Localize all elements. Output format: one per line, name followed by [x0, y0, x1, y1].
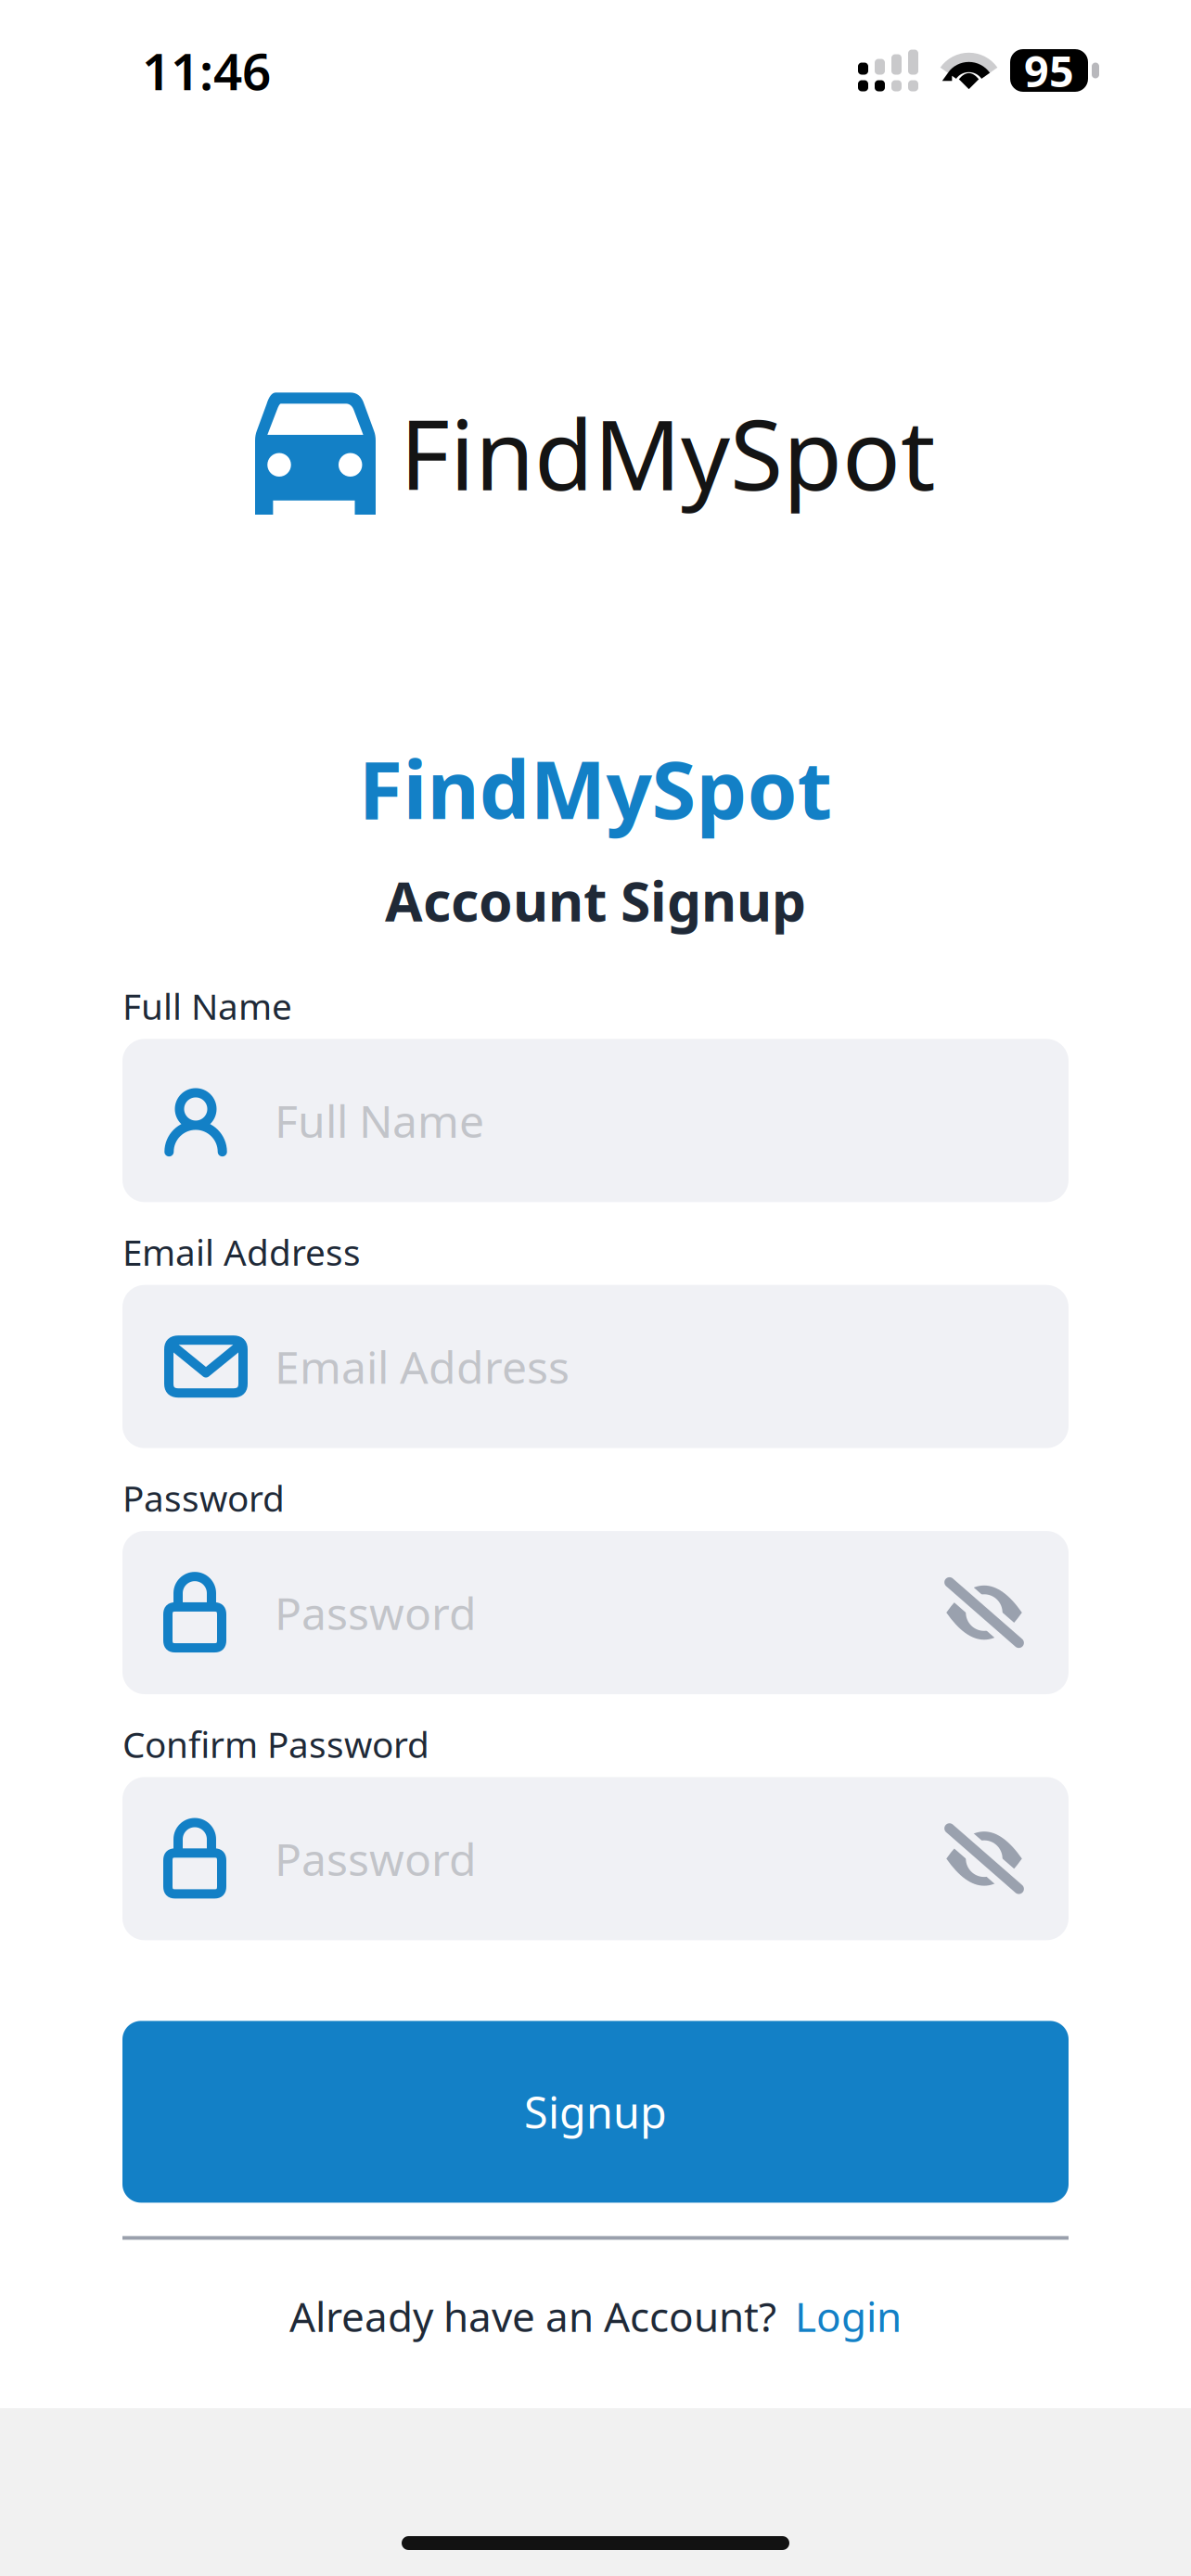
staticText: Confirm Password	[122, 1720, 429, 1768]
staticText: FindMySpot	[359, 734, 832, 841]
staticText: Password	[122, 1474, 285, 1522]
button[interactable]: Password	[122, 1777, 1069, 1940]
staticText: 95	[1024, 42, 1074, 99]
staticText: Full Name	[275, 1091, 484, 1150]
staticText: 11:46	[142, 37, 271, 104]
staticText: Email Address	[122, 1228, 361, 1276]
button[interactable]: Signup	[122, 2021, 1069, 2203]
staticText: Email Address	[275, 1337, 570, 1396]
staticText: Password	[275, 1583, 477, 1642]
staticText: Already have an Account?	[289, 2289, 776, 2343]
staticText: Signup	[524, 2083, 667, 2141]
staticText: Login	[795, 2289, 902, 2343]
staticText: Account Signup	[385, 864, 806, 937]
staticText: Full Name	[122, 982, 292, 1030]
staticText: Password	[275, 1829, 477, 1888]
button[interactable]: Full Name	[122, 1039, 1069, 1202]
button[interactable]: Email Address	[122, 1285, 1069, 1448]
staticText: FindMySpot	[400, 389, 936, 517]
button[interactable]: Password	[122, 1531, 1069, 1694]
button[interactable]: Login	[795, 2289, 902, 2343]
